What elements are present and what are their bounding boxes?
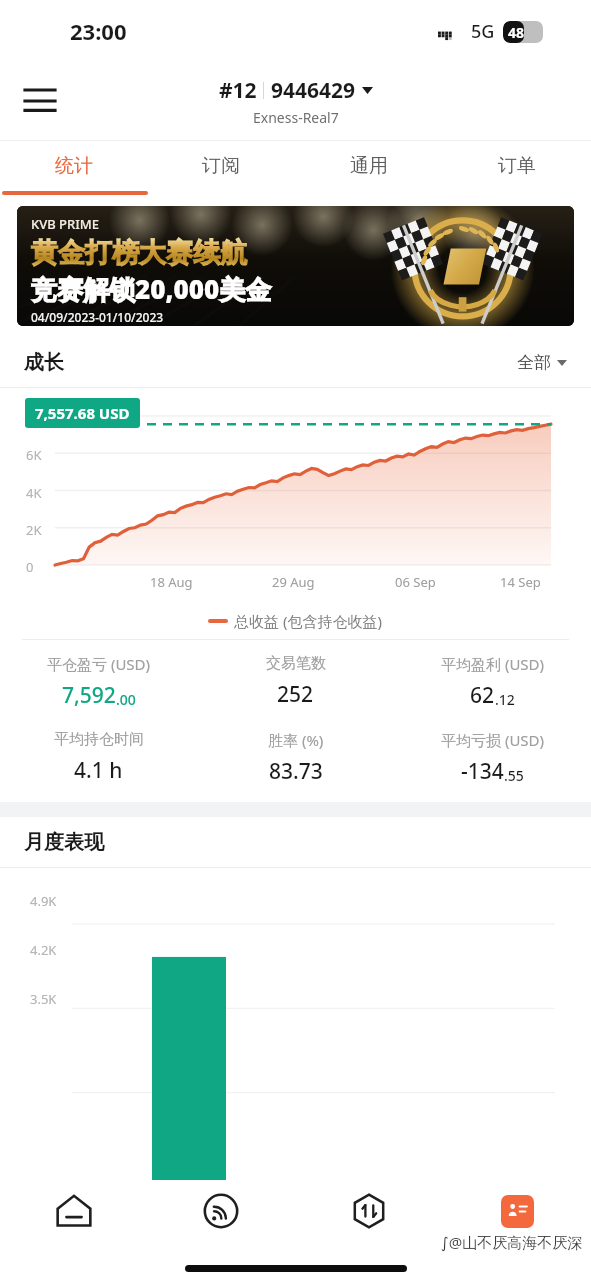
staticText: 6K: [26, 446, 42, 464]
staticText: 62: [470, 681, 495, 710]
button[interactable]: Home: [0, 1180, 147, 1242]
staticText: 平均盈利 (USD): [441, 654, 545, 674]
button[interactable]: 平仓盈亏 (USD): [0, 654, 197, 710]
staticText: 全部: [517, 352, 551, 373]
button[interactable]: 统计: [0, 141, 147, 191]
staticText: 2K: [26, 521, 42, 539]
staticText: 14 Sep: [500, 573, 541, 591]
staticText: 总收益 (包含持仓收益): [234, 611, 382, 631]
staticText: KVB PRIME: [31, 215, 100, 233]
button[interactable]: #12: [219, 76, 373, 127]
button[interactable]: 订阅: [147, 141, 295, 191]
staticText: 成长: [24, 350, 64, 375]
staticText: 18 Aug: [150, 573, 193, 591]
staticText: 3.5K: [30, 990, 57, 1008]
staticText: 交易笔数: [266, 654, 326, 673]
button[interactable]: 胜率 (%): [197, 730, 394, 786]
staticText: 04/09/2023-01/10/2023: [31, 309, 164, 325]
staticText: 23:00: [70, 16, 127, 46]
staticText: 4K: [26, 484, 42, 502]
staticText: ∫@山不厌高海不厌深: [441, 1232, 583, 1252]
staticText: 月度表现: [24, 830, 104, 855]
staticText: 252: [277, 680, 314, 709]
staticText: 统计: [55, 154, 93, 178]
button[interactable]: 平均盈利 (USD): [394, 654, 591, 710]
staticText: 29 Aug: [272, 573, 315, 591]
staticText: 平均亏损 (USD): [441, 730, 545, 750]
staticText: #12: [219, 76, 257, 105]
staticText: 7,557.68 USD: [35, 403, 130, 423]
button[interactable]: 通用: [295, 141, 443, 191]
staticText: .55: [504, 766, 524, 785]
button[interactable]: 全部: [517, 352, 567, 373]
button[interactable]: Signals: [147, 1180, 295, 1242]
button[interactable]: 平均持仓时间: [0, 730, 197, 785]
staticText: 5G: [471, 19, 495, 44]
staticText: 通用: [350, 154, 388, 178]
staticText: .00: [116, 690, 136, 709]
button[interactable]: Trade: [295, 1180, 443, 1242]
staticText: 8K: [26, 409, 42, 427]
staticText: 4.2K: [30, 941, 57, 959]
staticText: 7,592: [62, 681, 116, 710]
staticText: 订单: [498, 154, 536, 178]
staticText: 平均持仓时间: [54, 730, 144, 749]
button[interactable]: 交易笔数: [197, 654, 394, 709]
staticText: 4.9K: [30, 892, 57, 910]
staticText: 4.1 h: [74, 756, 123, 785]
button[interactable]: KVB PRIME: [17, 206, 574, 326]
staticText: 竞赛解锁20,000美金: [31, 271, 272, 307]
staticText: 订阅: [202, 154, 240, 178]
staticText: 9446429: [271, 76, 356, 105]
staticText: 48: [508, 23, 525, 42]
staticText: -134: [461, 757, 504, 786]
button[interactable]: Menu: [14, 75, 66, 127]
staticText: 0: [26, 558, 34, 576]
staticText: Exness-Real7: [253, 108, 339, 127]
staticText: 平仓盈亏 (USD): [47, 654, 151, 674]
staticText: 黄金打榜大赛续航: [31, 236, 247, 270]
staticText: 83.73: [269, 757, 323, 786]
staticText: .12: [495, 690, 515, 709]
button[interactable]: 平均亏损 (USD): [394, 730, 591, 786]
staticText: 06 Sep: [395, 573, 436, 591]
staticText: 胜率 (%): [268, 730, 324, 750]
button[interactable]: Profile: [443, 1180, 591, 1242]
button[interactable]: 订单: [443, 141, 591, 191]
